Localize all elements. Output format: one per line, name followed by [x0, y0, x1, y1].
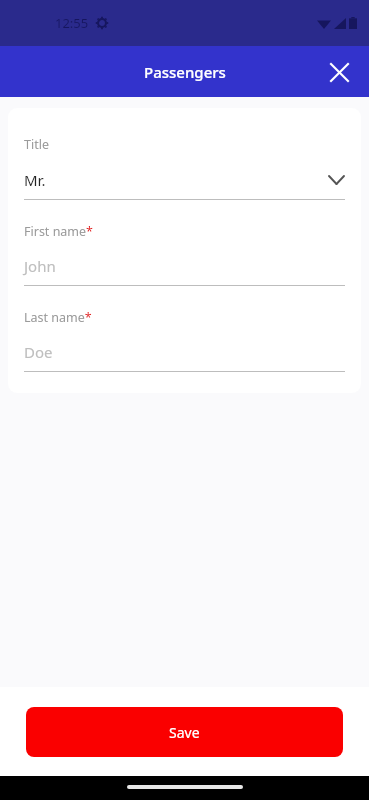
- button[interactable]: Doe: [24, 342, 347, 362]
- button[interactable]: Close: [323, 56, 355, 88]
- button[interactable]: Mr.: [24, 169, 347, 191]
- other: Open title dropdown: [325, 169, 347, 191]
- staticText: Passengers: [144, 62, 226, 82]
- button[interactable]: John: [24, 256, 347, 276]
- staticText: Title: [24, 136, 49, 153]
- staticText: 12:55: [55, 14, 89, 32]
- staticText: Mr.: [24, 170, 325, 190]
- staticText: First name*: [24, 223, 93, 240]
- button[interactable]: Save: [26, 707, 343, 757]
- staticText: Last name*: [24, 309, 92, 326]
- staticText: Save: [169, 723, 200, 742]
